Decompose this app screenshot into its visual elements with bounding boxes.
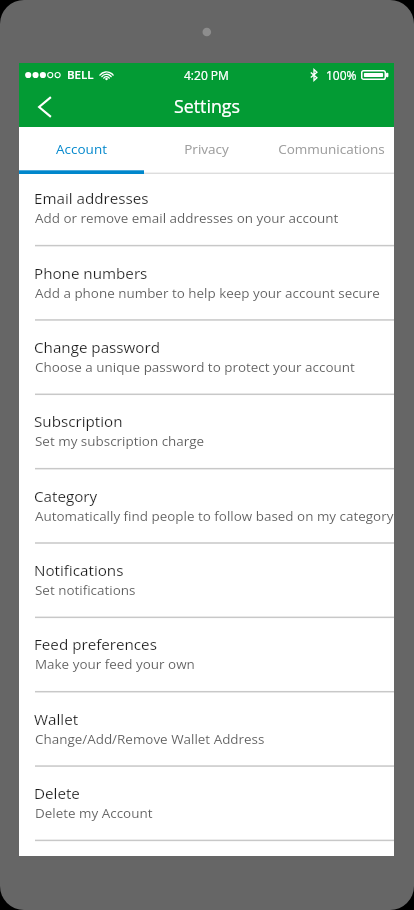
button[interactable]: Privacy	[144, 127, 269, 170]
button[interactable]: Change password	[19, 320, 394, 394]
staticText: Delete my Account	[35, 804, 153, 822]
staticText: Change password	[34, 337, 160, 358]
button[interactable]: Wallet	[19, 692, 394, 766]
staticText: Email addresses	[34, 188, 149, 209]
button[interactable]: Subscription	[19, 394, 394, 468]
button[interactable]: Category	[19, 469, 394, 543]
staticText: BELL	[67, 67, 94, 83]
staticText: Automatically find people to follow base…	[35, 507, 394, 525]
staticText: Add a phone number to help keep your acc…	[35, 284, 380, 302]
button[interactable]: Phone numbers	[19, 246, 394, 320]
button[interactable]: Back	[19, 87, 63, 127]
staticText: Change/Add/Remove Wallet Address	[35, 730, 265, 748]
staticText: Set my subscription charge	[35, 432, 205, 450]
staticText: 4:20 PM	[184, 67, 229, 83]
button[interactable]: Feed preferences	[19, 617, 394, 691]
staticText: Communications	[278, 140, 385, 158]
staticText: Choose a unique password to protect your…	[35, 358, 355, 376]
staticText: Settings	[174, 94, 240, 118]
button[interactable]: Delete	[19, 766, 394, 840]
staticText: Make your feed your own	[35, 655, 195, 673]
button[interactable]: Notifications	[19, 543, 394, 617]
button[interactable]: Communications	[269, 127, 394, 170]
button[interactable]: Account	[19, 127, 144, 170]
staticText: Account	[56, 140, 107, 158]
staticText: Phone numbers	[34, 263, 148, 284]
staticText: Set notifications	[35, 581, 136, 599]
staticText: Notifications	[34, 560, 124, 581]
staticText: Privacy	[184, 140, 229, 158]
staticText: Delete	[34, 783, 80, 804]
staticText: Category	[34, 486, 98, 507]
staticText: Feed preferences	[34, 634, 157, 655]
staticText: Subscription	[34, 411, 123, 432]
staticText: Wallet	[34, 709, 79, 730]
staticText: Add or remove email addresses on your ac…	[35, 209, 339, 227]
staticText: 100%	[326, 67, 357, 83]
button[interactable]: Email addresses	[19, 171, 394, 245]
